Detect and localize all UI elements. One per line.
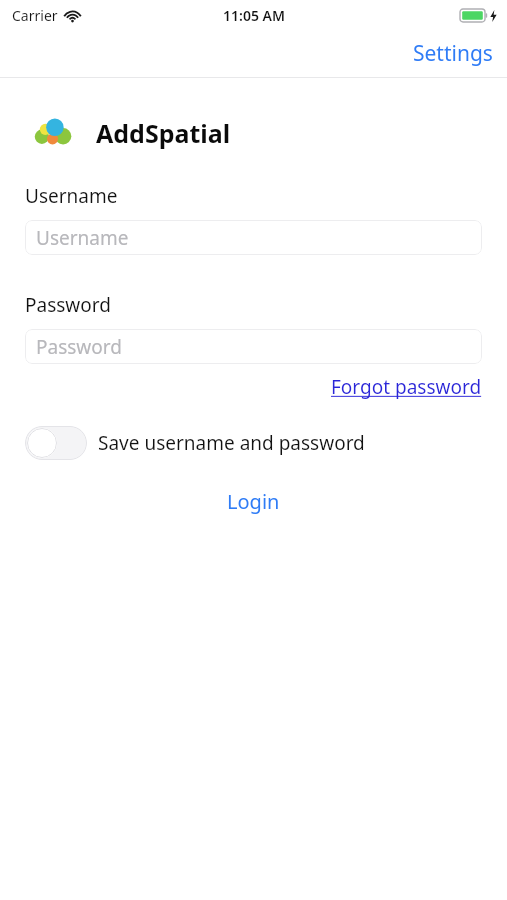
staticText: Login <box>227 488 280 515</box>
button[interactable]: Save username and password toggle <box>25 426 87 460</box>
button[interactable]: Login <box>207 482 300 521</box>
staticText: Username <box>25 183 118 209</box>
staticText: Password <box>36 334 122 360</box>
button[interactable]: Settings <box>399 33 507 74</box>
staticText: Save username and password <box>98 430 365 456</box>
staticText: Carrier <box>12 6 58 25</box>
button[interactable]: Password <box>25 329 482 364</box>
staticText: AddSpatial <box>96 116 231 150</box>
button[interactable]: Username <box>25 220 482 255</box>
staticText: Username <box>36 225 129 251</box>
staticText: Settings <box>413 39 493 68</box>
staticText: 11:05 AM <box>223 6 285 25</box>
button[interactable]: Forgot password <box>323 364 482 404</box>
staticText: Password <box>25 292 111 318</box>
staticText: Forgot password <box>331 374 482 400</box>
